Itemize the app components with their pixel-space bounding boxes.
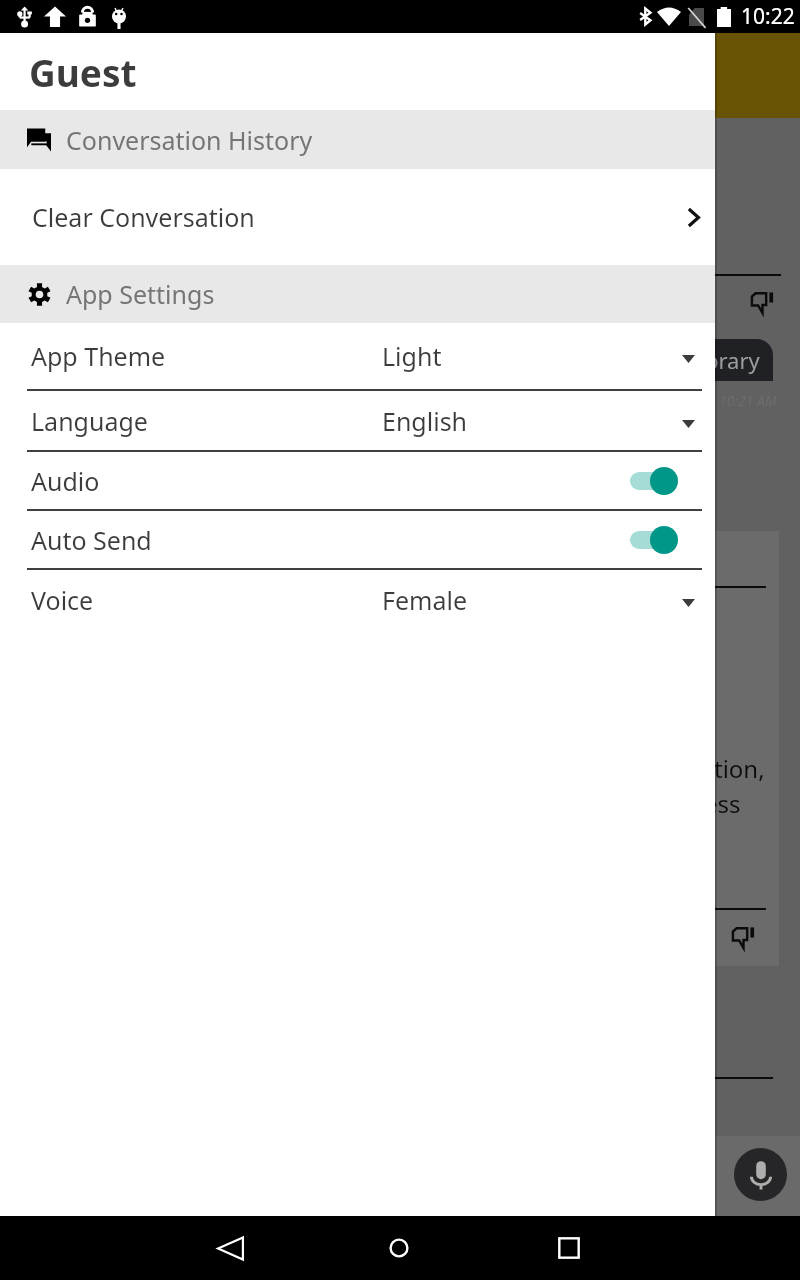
- staticText: to access: [638, 787, 741, 820]
- staticText: a selection,: [638, 752, 765, 785]
- staticText: Light: [382, 339, 442, 373]
- staticText: App Theme: [31, 339, 166, 373]
- staticText: Go to my library: [594, 345, 760, 375]
- staticText: English: [382, 404, 468, 438]
- button[interactable]: Voice: [0, 570, 715, 630]
- staticText: Language: [31, 404, 148, 438]
- staticText: 10:22: [741, 2, 795, 31]
- staticText: 10:21 AM: [719, 391, 777, 410]
- staticText: Female: [382, 583, 468, 617]
- staticText: Voice: [31, 583, 94, 617]
- button[interactable]: App Settings: [0, 265, 715, 323]
- button[interactable]: Conversation History: [0, 110, 715, 169]
- button[interactable]: Voice input: [734, 1148, 787, 1201]
- staticText: Audio: [31, 464, 100, 498]
- staticText: Clear Conversation: [32, 200, 255, 234]
- button[interactable]: Language: [0, 391, 715, 452]
- button[interactable]: Audio: [0, 452, 715, 511]
- staticText: Auto Send: [31, 523, 152, 557]
- button[interactable]: Recent apps: [484, 1216, 654, 1280]
- staticText: App Settings: [66, 277, 215, 311]
- staticText: Conversation History: [66, 123, 313, 157]
- staticText: Guest: [29, 47, 137, 97]
- button[interactable]: App Theme: [0, 323, 715, 391]
- button[interactable]: Auto Send: [0, 511, 715, 570]
- button[interactable]: Back: [146, 1216, 314, 1280]
- button[interactable]: Clear Conversation: [0, 169, 715, 265]
- button[interactable]: Home: [314, 1216, 484, 1280]
